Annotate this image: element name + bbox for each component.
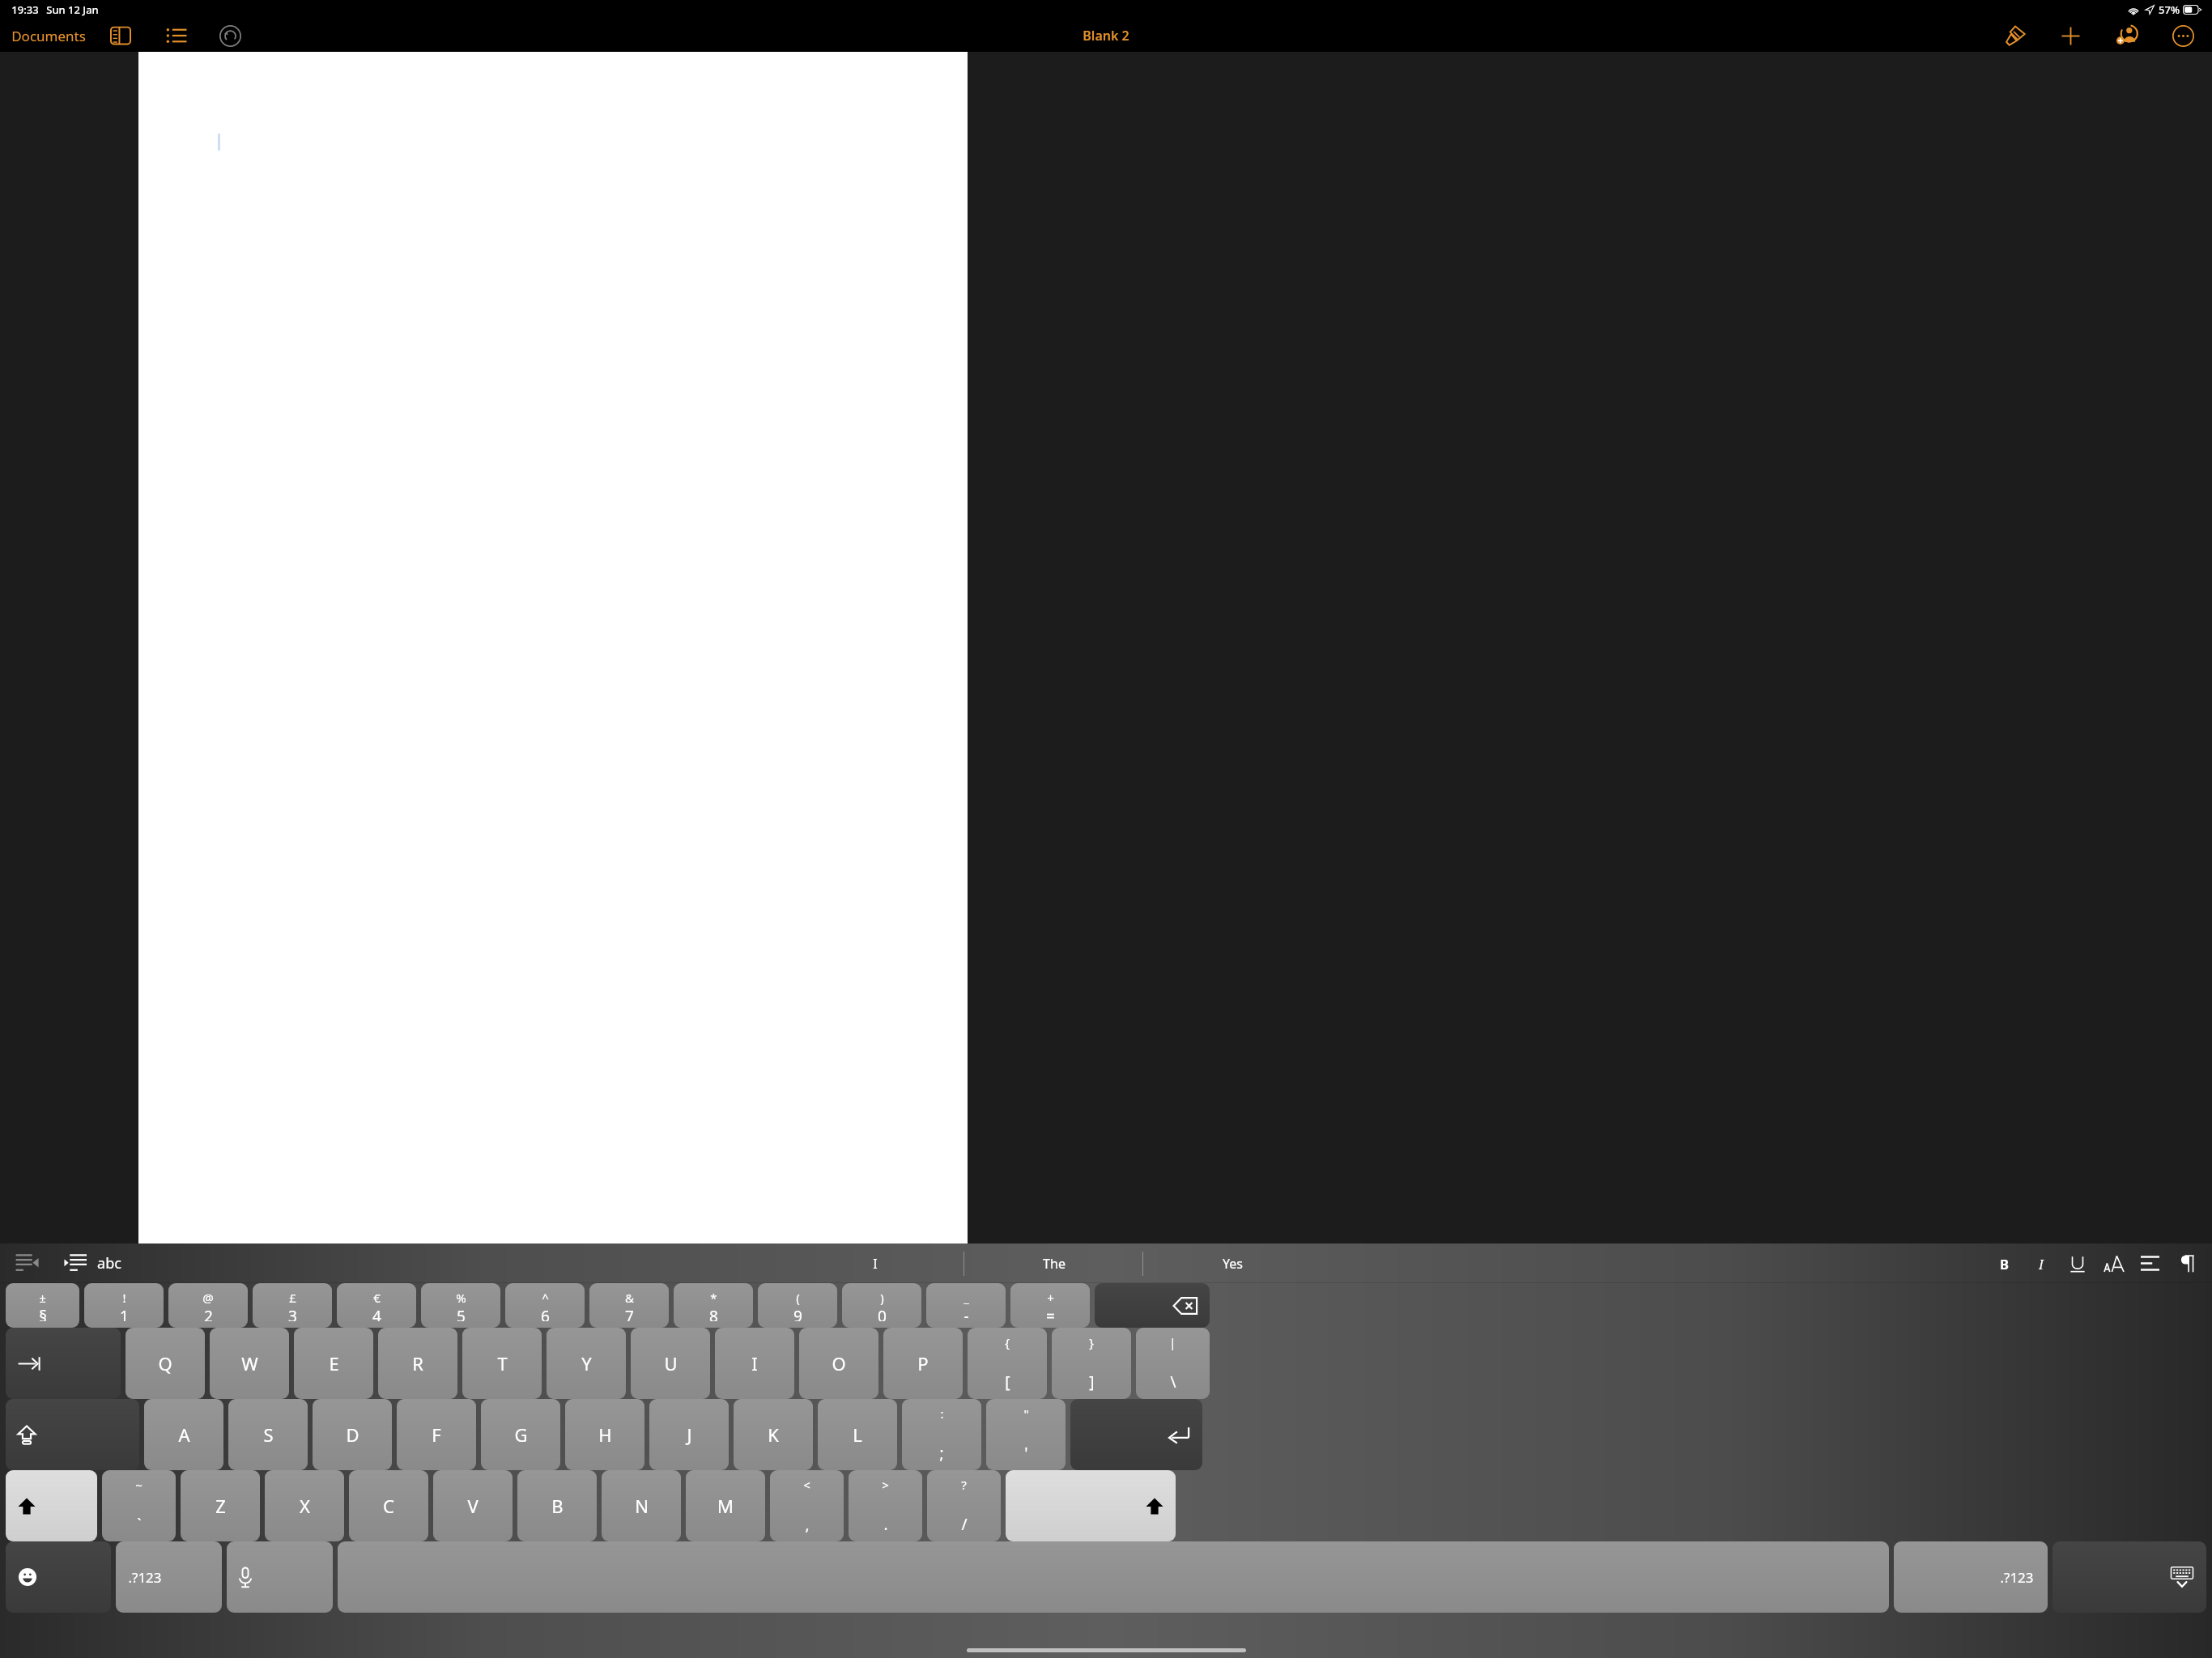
button[interactable]: 2 <box>168 1283 248 1328</box>
button[interactable]: More options <box>2167 19 2200 52</box>
button[interactable]: Hide keyboard <box>2052 1541 2206 1613</box>
button[interactable]: R <box>378 1328 457 1399</box>
button[interactable]: C <box>349 1470 428 1541</box>
button[interactable]: I <box>715 1328 794 1399</box>
staticText: + <box>1047 1290 1054 1306</box>
button[interactable]: ] <box>1052 1328 1131 1399</box>
button[interactable]: A <box>144 1399 223 1470</box>
button[interactable]: \ <box>1136 1328 1210 1399</box>
button[interactable]: Outline list <box>160 19 193 52</box>
staticText: ] <box>1089 1371 1095 1392</box>
button[interactable]: Insert <box>2055 20 2087 52</box>
button[interactable]: Italic <box>2023 1243 2059 1283</box>
button[interactable]: ` <box>102 1470 176 1541</box>
button[interactable]: Decrease indent <box>0 1243 53 1283</box>
staticText: P <box>917 1351 929 1375</box>
button[interactable]: 4 <box>337 1283 416 1328</box>
button[interactable]: J <box>649 1399 729 1470</box>
button[interactable]: 9 <box>758 1283 837 1328</box>
button[interactable]: S <box>228 1399 308 1470</box>
staticText: V <box>467 1494 479 1518</box>
button[interactable]: Documents <box>0 21 97 51</box>
button[interactable]: N <box>602 1470 681 1541</box>
button[interactable]: Shift <box>1006 1470 1176 1541</box>
button[interactable]: Q <box>125 1328 205 1399</box>
button[interactable]: = <box>1010 1283 1090 1328</box>
button[interactable]: Return <box>1070 1399 1202 1470</box>
staticText: .?123 <box>2000 1568 2034 1587</box>
button[interactable]: , <box>770 1470 844 1541</box>
button[interactable]: Increase indent <box>53 1243 97 1283</box>
button[interactable]: Dictation <box>227 1541 333 1613</box>
button[interactable]: Z <box>181 1470 260 1541</box>
button[interactable]: F <box>397 1399 476 1470</box>
button[interactable]: 1 <box>84 1283 164 1328</box>
button[interactable]: Sidebar <box>104 19 137 52</box>
staticText: Z <box>215 1494 226 1518</box>
button[interactable]: 5 <box>421 1283 500 1328</box>
button[interactable]: U <box>631 1328 710 1399</box>
button[interactable]: X <box>265 1470 344 1541</box>
staticText: % <box>456 1290 466 1306</box>
button[interactable]: W <box>210 1328 289 1399</box>
button[interactable]: 0 <box>842 1283 921 1328</box>
button[interactable]: Alignment <box>2132 1243 2168 1283</box>
button[interactable]: .?123 <box>116 1541 222 1613</box>
button[interactable]: Y <box>547 1328 626 1399</box>
button[interactable]: T <box>462 1328 542 1399</box>
staticText: U <box>664 1351 678 1375</box>
button[interactable]: K <box>734 1399 813 1470</box>
button[interactable]: Caps lock <box>6 1399 139 1470</box>
button[interactable]: 7 <box>589 1283 669 1328</box>
button[interactable]: Yes <box>1143 1243 1322 1283</box>
button[interactable]: O <box>799 1328 878 1399</box>
button[interactable]: Undo <box>214 19 247 52</box>
button[interactable]: H <box>565 1399 644 1470</box>
button[interactable]: 3 <box>253 1283 332 1328</box>
staticText: 9 <box>793 1306 802 1321</box>
button[interactable]: V <box>433 1470 513 1541</box>
button[interactable]: Backspace <box>1095 1283 1210 1328</box>
button[interactable]: / <box>927 1470 1001 1541</box>
button[interactable]: Format brush <box>1999 19 2031 52</box>
button[interactable]: .?123 <box>1894 1541 2048 1613</box>
button[interactable]: P <box>883 1328 963 1399</box>
button[interactable]: Paragraph marks <box>2168 1243 2205 1283</box>
button[interactable]: Tab <box>6 1328 121 1399</box>
button[interactable]: D <box>313 1399 392 1470</box>
button[interactable]: G <box>481 1399 560 1470</box>
button[interactable]: 8 <box>674 1283 753 1328</box>
button[interactable]: Collaborate <box>2110 19 2144 52</box>
button[interactable] <box>138 52 968 1243</box>
staticText: \ <box>1170 1371 1176 1392</box>
button[interactable]: Bold <box>1986 1243 2023 1283</box>
button[interactable]: . <box>849 1470 922 1541</box>
button[interactable]: Underline <box>2059 1243 2095 1283</box>
button[interactable]: Space <box>338 1541 1889 1613</box>
button[interactable]: ; <box>902 1399 981 1470</box>
button[interactable]: L <box>818 1399 897 1470</box>
button[interactable]: ' <box>986 1399 1066 1470</box>
button[interactable]: M <box>686 1470 765 1541</box>
staticText: & <box>625 1290 634 1306</box>
button[interactable]: - <box>926 1283 1006 1328</box>
button[interactable]: abc <box>97 1243 121 1283</box>
button[interactable]: The <box>964 1243 1143 1283</box>
staticText: 5 <box>457 1306 466 1321</box>
button[interactable]: E <box>294 1328 373 1399</box>
staticText: X <box>300 1494 310 1518</box>
staticText: L <box>853 1422 862 1447</box>
button[interactable]: Emoji <box>6 1541 111 1613</box>
button[interactable]: B <box>517 1470 597 1541</box>
button[interactable]: Text size <box>2095 1243 2132 1283</box>
button[interactable]: 6 <box>505 1283 585 1328</box>
button[interactable]: I <box>785 1243 964 1283</box>
staticText: 0 <box>878 1306 887 1321</box>
button[interactable]: [ <box>968 1328 1047 1399</box>
staticText: ~ <box>135 1477 143 1493</box>
staticText: * <box>710 1290 717 1306</box>
button[interactable]: § <box>6 1283 79 1328</box>
staticText: D <box>346 1422 359 1447</box>
button[interactable]: Shift <box>6 1470 97 1541</box>
staticText: I <box>751 1351 758 1375</box>
